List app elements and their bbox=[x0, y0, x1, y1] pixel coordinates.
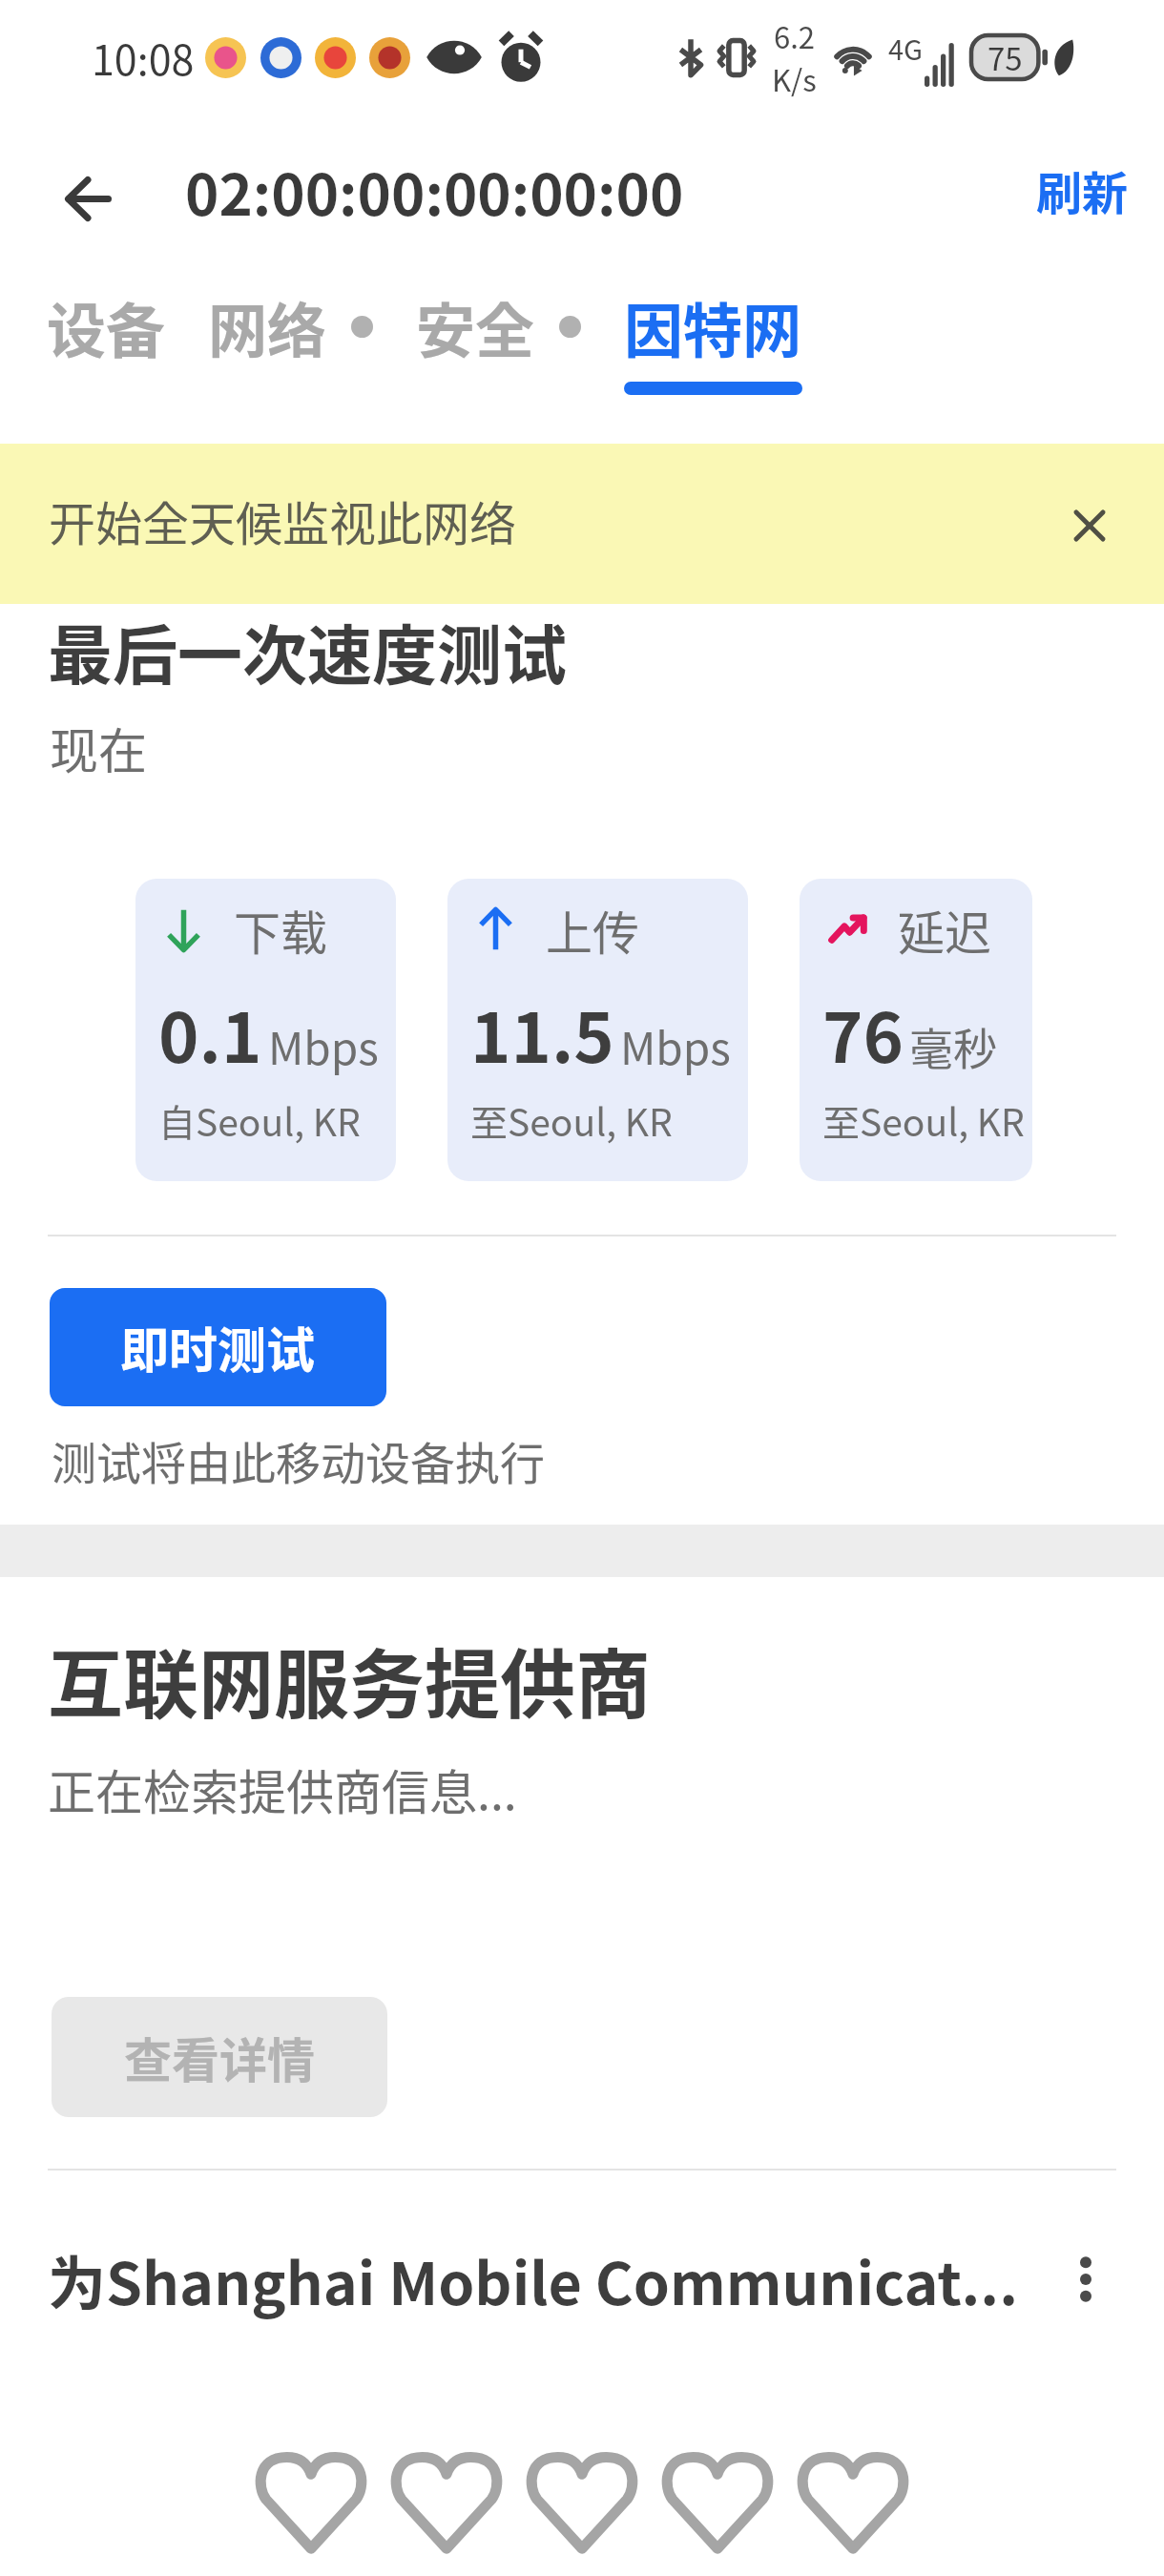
staticText: 开始全天候监视此网络 bbox=[49, 487, 517, 554]
button[interactable]: 上传 bbox=[447, 879, 748, 1181]
staticText: 76 bbox=[822, 983, 904, 1082]
staticText: 查看详情 bbox=[124, 2023, 315, 2091]
staticText: 6.2 bbox=[774, 14, 816, 57]
button[interactable]: 网络 bbox=[208, 265, 327, 370]
staticText: 测试将由此移动设备执行 bbox=[52, 1427, 545, 1492]
staticText: 网络 bbox=[208, 284, 327, 370]
staticText: 即时测试 bbox=[120, 1312, 316, 1382]
staticText: 至Seoul, KR bbox=[822, 1093, 1025, 1147]
button[interactable]: 因特网 bbox=[624, 265, 802, 395]
staticText: 下载 bbox=[234, 896, 328, 964]
button[interactable]: Rate 5 star bbox=[785, 2441, 921, 2565]
button[interactable]: 安全 bbox=[416, 265, 535, 370]
staticText: 设备 bbox=[47, 284, 166, 370]
button[interactable]: Rate 2 star bbox=[379, 2441, 514, 2565]
button[interactable]: 即时测试 bbox=[50, 1288, 386, 1406]
button[interactable]: 查看详情 bbox=[52, 1997, 387, 2117]
staticText: 75 bbox=[987, 34, 1023, 80]
staticText: 延迟 bbox=[898, 896, 992, 964]
staticText: 上传 bbox=[546, 896, 640, 964]
staticText: 正在检索提供商信息... bbox=[48, 1755, 517, 1823]
button[interactable]: 下载 bbox=[135, 879, 396, 1181]
staticText: 0.1 bbox=[158, 983, 262, 1082]
button[interactable]: Back bbox=[0, 114, 139, 265]
button[interactable]: Close banner bbox=[1042, 476, 1137, 571]
staticText: K/s bbox=[772, 57, 817, 100]
staticText: 最后一次速度测试 bbox=[48, 604, 568, 697]
button[interactable]: Rate 3 star bbox=[514, 2441, 650, 2565]
staticText: 因特网 bbox=[624, 284, 802, 370]
staticText: 10:08 bbox=[92, 28, 195, 87]
staticText: 毫秒 bbox=[909, 1014, 997, 1078]
staticText: 互联网服务提供商 bbox=[48, 1625, 651, 1734]
staticText: 11.5 bbox=[470, 983, 614, 1082]
staticText: Mbps bbox=[620, 1014, 731, 1078]
staticText: 4G bbox=[888, 28, 924, 68]
staticText: 至Seoul, KR bbox=[470, 1093, 673, 1147]
staticText: 为Shanghai Mobile Communicat... bbox=[48, 2237, 1018, 2321]
button[interactable]: Rate 4 star bbox=[650, 2441, 785, 2565]
button[interactable]: Rate 1 star bbox=[243, 2441, 379, 2565]
staticText: 刷新 bbox=[1036, 156, 1129, 223]
staticText: Mbps bbox=[268, 1014, 379, 1078]
button[interactable]: 延迟 bbox=[800, 879, 1032, 1181]
staticText: 安全 bbox=[416, 284, 535, 370]
button[interactable]: 刷新 bbox=[994, 132, 1164, 248]
staticText: 02:00:00:00:00:00 bbox=[185, 149, 684, 232]
button[interactable]: More options bbox=[1046, 2239, 1126, 2319]
button[interactable]: 设备 bbox=[47, 265, 166, 370]
staticText: 现在 bbox=[50, 713, 148, 783]
staticText: 自Seoul, KR bbox=[158, 1093, 361, 1147]
